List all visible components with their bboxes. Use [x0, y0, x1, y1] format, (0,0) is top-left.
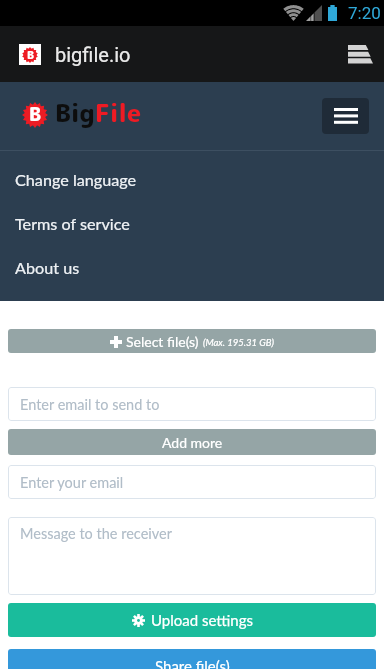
staticText: 7:20 — [348, 3, 381, 23]
staticText: Enter email to send to — [20, 396, 160, 413]
staticText: Select file(s) — [126, 333, 199, 350]
staticText: Change language — [15, 170, 137, 189]
button[interactable]: Message to the receiver — [8, 517, 376, 595]
button[interactable]: Toggle navigation menu — [322, 98, 369, 134]
staticText: About us — [15, 258, 80, 277]
staticText: File — [95, 95, 142, 130]
staticText: Terms of service — [15, 214, 130, 233]
button[interactable]: Upload settings — [8, 603, 376, 637]
staticText: Big — [55, 95, 95, 130]
button[interactable]: Share file(s) — [8, 649, 376, 669]
staticText: Message to the receiver — [20, 525, 172, 542]
staticText: Share file(s) — [155, 657, 230, 669]
staticText: Enter your email — [20, 474, 124, 491]
button[interactable]: Enter your email — [8, 465, 376, 499]
button[interactable]: Enter email to send to — [8, 387, 376, 421]
staticText: Upload settings — [151, 611, 253, 629]
staticText: Add more — [162, 434, 223, 451]
button[interactable]: Select file(s) — [8, 329, 376, 353]
staticText: B — [29, 101, 41, 127]
button[interactable]: Add more — [8, 429, 376, 455]
button[interactable]: About us — [0, 245, 384, 289]
button[interactable]: Terms of service — [0, 201, 384, 245]
staticText: B — [27, 47, 34, 62]
staticText: bigfile.io — [55, 43, 131, 66]
button[interactable]: Change language — [0, 157, 384, 201]
staticText: (Max. 195.31 GB) — [203, 337, 274, 348]
button[interactable]: Browser tabs — [338, 33, 382, 77]
